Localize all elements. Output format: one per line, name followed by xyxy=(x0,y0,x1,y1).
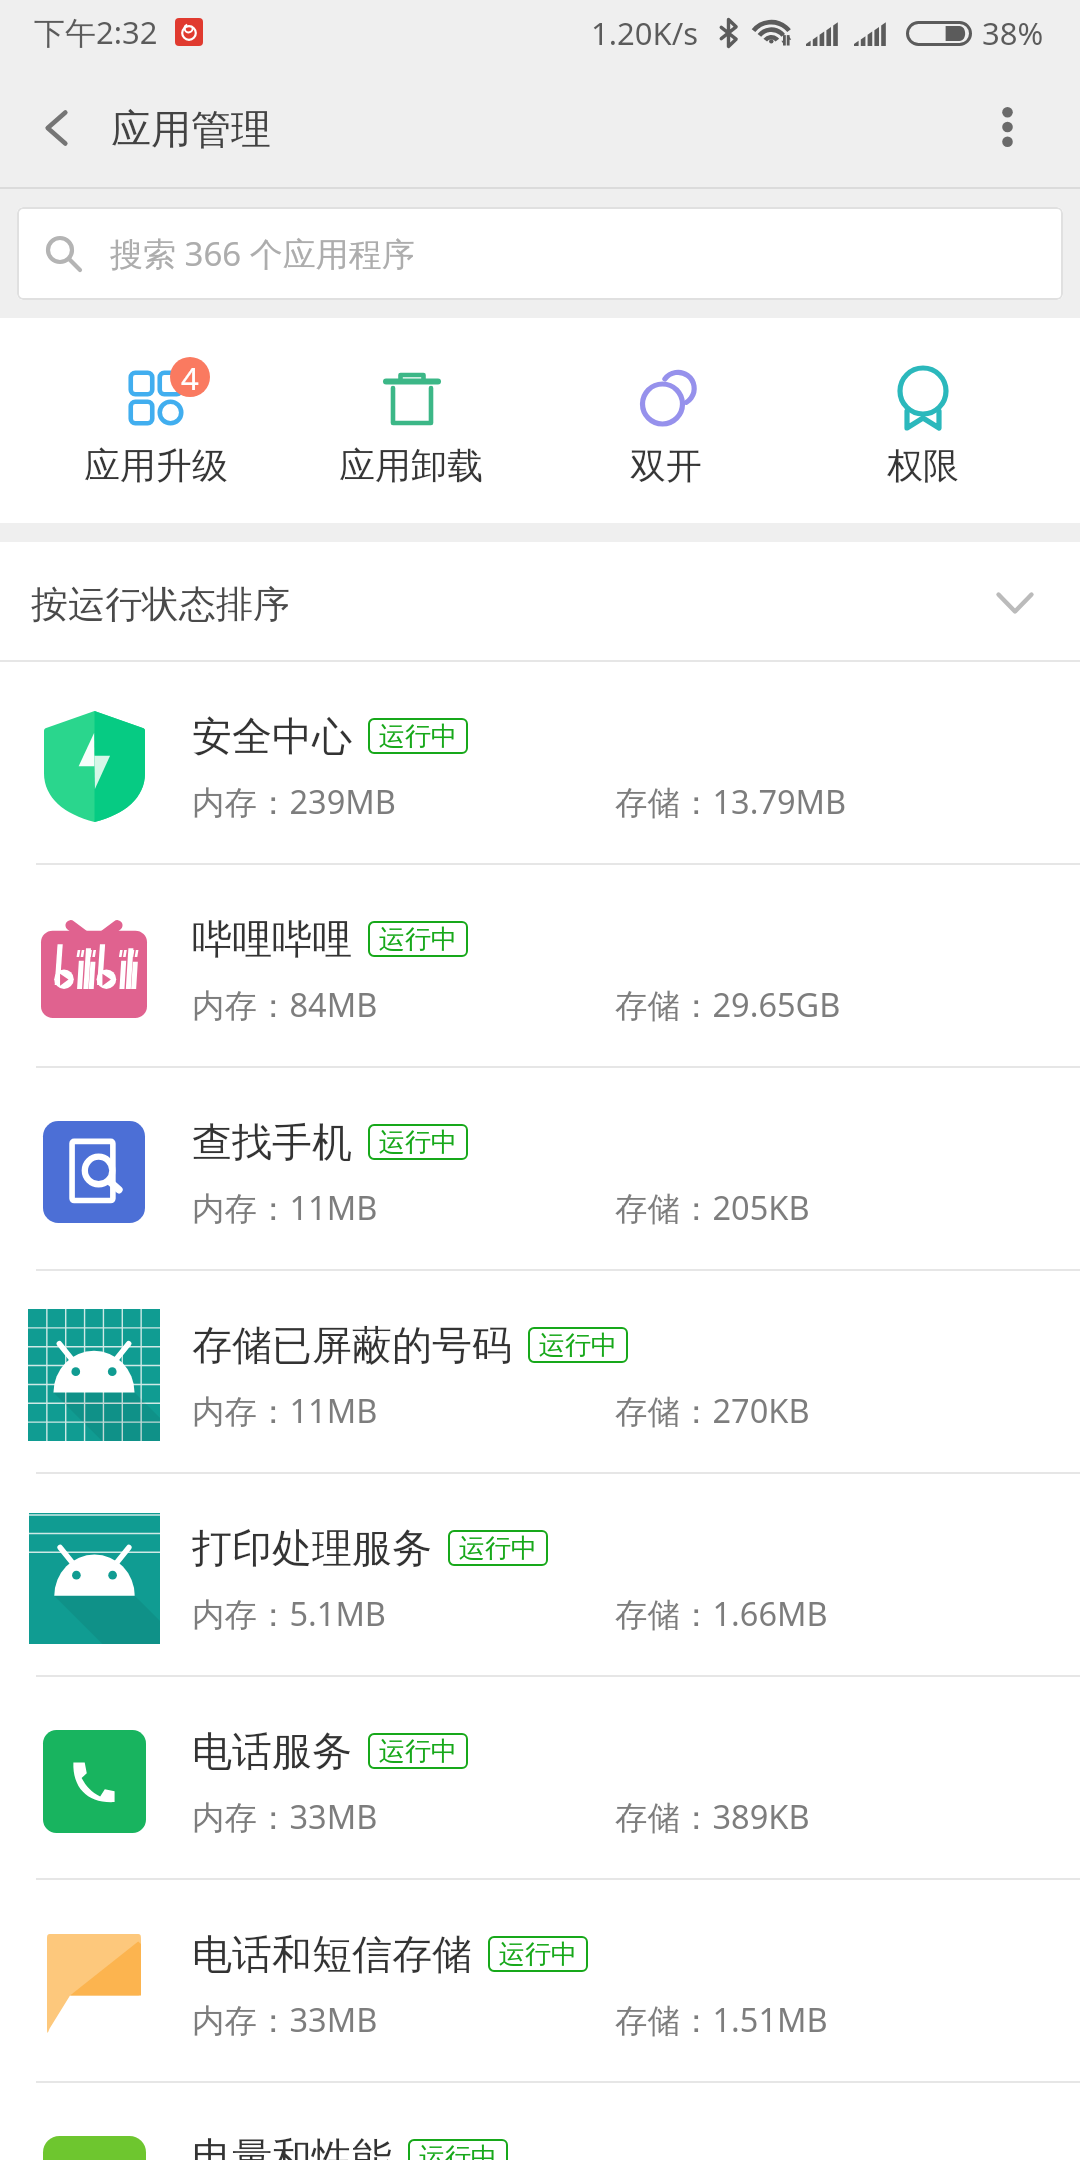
staticText: 运行中 xyxy=(379,1735,457,1768)
staticText: 运行中 xyxy=(459,1532,537,1565)
button[interactable]: 搜索 366 个应用程序 xyxy=(17,207,1063,300)
staticText: 电话和短信存储 xyxy=(192,1929,472,1979)
button[interactable]: More options xyxy=(948,83,1066,189)
staticText: 存储：29.65GB xyxy=(615,982,841,1026)
staticText: 内存：33MB xyxy=(192,1997,615,2041)
staticText: 电话服务 xyxy=(192,1726,352,1776)
staticText: 存储：270KB xyxy=(615,1388,810,1432)
button[interactable]: 权限 xyxy=(818,334,1028,507)
staticText: 存储：13.79MB xyxy=(615,779,847,823)
button[interactable]: 哔哩哔哩 xyxy=(0,865,1080,1068)
staticText: 安全中心 xyxy=(192,711,352,761)
staticText: 应用升级 xyxy=(51,443,261,488)
staticText: 内存：11MB xyxy=(192,1388,615,1432)
button[interactable]: 打印处理服务 xyxy=(0,1474,1080,1677)
staticText: 存储：1.51MB xyxy=(615,1997,828,2041)
button[interactable]: 电话和短信存储 xyxy=(0,1880,1080,2083)
staticText: 应用卸载 xyxy=(306,443,516,488)
staticText: 搜索 366 个应用程序 xyxy=(110,231,415,276)
staticText: 运行中 xyxy=(539,1329,617,1362)
button[interactable]: 查找手机 xyxy=(0,1068,1080,1271)
staticText: 运行中 xyxy=(379,923,457,956)
staticText: 电量和性能 xyxy=(192,2132,392,2160)
staticText: 内存：33MB xyxy=(192,1794,615,1838)
staticText: 内存：239MB xyxy=(192,779,615,823)
staticText: 内存：84MB xyxy=(192,982,615,1026)
button[interactable]: 应用升级 xyxy=(51,334,261,507)
staticText: 权限 xyxy=(818,443,1028,488)
button[interactable]: 双开 xyxy=(561,334,771,507)
button[interactable]: 电量和性能 xyxy=(0,2083,1080,2160)
button[interactable]: 应用卸载 xyxy=(306,334,516,507)
button[interactable]: 存储已屏蔽的号码 xyxy=(0,1271,1080,1474)
button[interactable]: 电话服务 xyxy=(0,1677,1080,1880)
staticText: 存储：389KB xyxy=(615,1794,810,1838)
staticText: 存储已屏蔽的号码 xyxy=(192,1320,512,1370)
staticText: 内存：5.1MB xyxy=(192,1591,615,1635)
staticText: 4 xyxy=(181,357,199,397)
staticText: 双开 xyxy=(561,443,771,488)
staticText: 运行中 xyxy=(499,1938,577,1971)
staticText: 查找手机 xyxy=(192,1117,352,1167)
staticText: 打印处理服务 xyxy=(192,1523,432,1573)
staticText: 内存：11MB xyxy=(192,1185,615,1229)
staticText: 运行中 xyxy=(379,720,457,753)
staticText: 运行中 xyxy=(419,2141,497,2160)
staticText: 存储：1.66MB xyxy=(615,1591,828,1635)
staticText: 应用管理 xyxy=(111,104,271,154)
staticText: 运行中 xyxy=(379,1126,457,1159)
staticText: 38% xyxy=(982,12,1044,54)
staticText: 哔哩哔哩 xyxy=(192,914,352,964)
button[interactable]: 按运行状态排序 xyxy=(0,542,1080,662)
staticText: 按运行状态排序 xyxy=(31,581,290,628)
button[interactable]: Back xyxy=(0,83,112,189)
staticText: 存储：205KB xyxy=(615,1185,810,1229)
staticText: 1.20K/s xyxy=(591,12,699,54)
button[interactable]: 安全中心 xyxy=(0,662,1080,865)
staticText: 下午2:32 xyxy=(34,11,158,53)
